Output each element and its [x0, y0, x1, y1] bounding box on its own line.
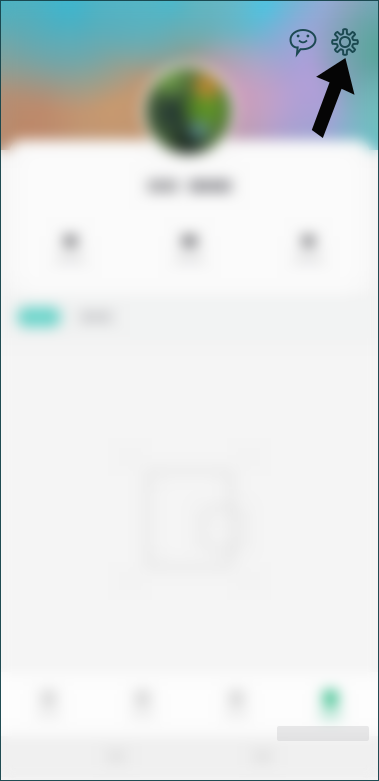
button[interactable]: Selected tab: [10, 296, 68, 338]
button[interactable]: Discover: [95, 672, 189, 736]
button[interactable]: Other tab: [68, 296, 124, 338]
button[interactable]: Home: [1, 672, 95, 736]
button[interactable]: Stat three: [249, 232, 368, 266]
button[interactable]: Settings: [327, 24, 363, 60]
button[interactable]: Profile: [283, 672, 377, 736]
button[interactable]: Home: [233, 736, 293, 777]
button[interactable]: Feedback: [285, 24, 321, 60]
button[interactable]: Stat one: [11, 232, 130, 266]
button[interactable]: Notifications: [189, 672, 283, 736]
button[interactable]: Stat two: [130, 232, 249, 266]
